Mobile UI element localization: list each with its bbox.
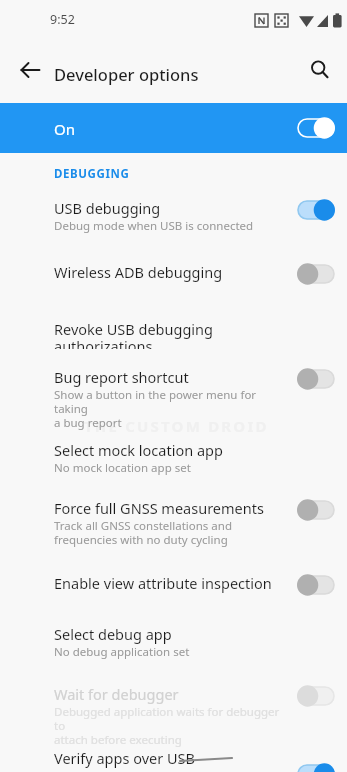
button[interactable]	[291, 113, 341, 143]
button[interactable]: Wait for debugger	[0, 684, 347, 740]
button[interactable]: Search	[300, 50, 340, 90]
button[interactable]	[291, 259, 341, 289]
button[interactable]	[291, 195, 341, 225]
button[interactable]: USB debugging	[0, 198, 347, 242]
staticText: Select debug app	[54, 624, 304, 644]
staticText: Debug mode when USB is connected	[54, 218, 284, 234]
staticText: Wait for debugger	[54, 684, 304, 704]
staticText: Revoke USB debugging authorizations	[54, 319, 304, 349]
button[interactable]	[291, 762, 341, 772]
staticText: Select mock location app	[54, 440, 304, 460]
button[interactable]	[291, 570, 341, 600]
button[interactable]	[291, 681, 341, 711]
button[interactable]: Force full GNSS measurements	[0, 498, 347, 554]
staticText: THE CUSTOM DROID	[84, 416, 344, 436]
button[interactable]: Back	[10, 50, 50, 90]
staticText: DEBUGGING	[54, 166, 254, 182]
button[interactable]: Wireless ADB debugging	[0, 262, 347, 306]
staticText: Show a button in the power menu for taki…	[54, 387, 284, 431]
staticText: No mock location app set	[54, 460, 284, 476]
staticText: Debugged application waits for debugger …	[54, 704, 284, 748]
staticText: USB debugging	[54, 198, 304, 218]
button[interactable]	[291, 364, 341, 394]
button[interactable]: Enable view attribute inspection	[0, 573, 347, 617]
button[interactable]: Select debug app	[0, 624, 347, 668]
button[interactable]	[291, 495, 341, 525]
staticText: Enable view attribute inspection	[54, 573, 304, 593]
staticText: No debug application set	[54, 644, 284, 660]
button[interactable]: Verify apps over USB	[0, 748, 347, 772]
staticText: 9:52	[50, 11, 347, 28]
button[interactable]: Select mock location app	[0, 440, 347, 484]
staticText: On	[54, 119, 154, 139]
button[interactable]: Bug report shortcut	[0, 367, 347, 423]
staticText: Force full GNSS measurements	[54, 498, 304, 518]
staticText: Developer options	[54, 63, 284, 85]
staticText: Verify apps over USB	[54, 748, 274, 768]
button[interactable]: Revoke USB debugging authorizations	[0, 319, 347, 349]
staticText: Bug report shortcut	[54, 367, 304, 387]
staticText: Wireless ADB debugging	[54, 262, 304, 282]
staticText: Track all GNSS constellations and freque…	[54, 518, 284, 548]
button[interactable]: On	[0, 103, 347, 153]
